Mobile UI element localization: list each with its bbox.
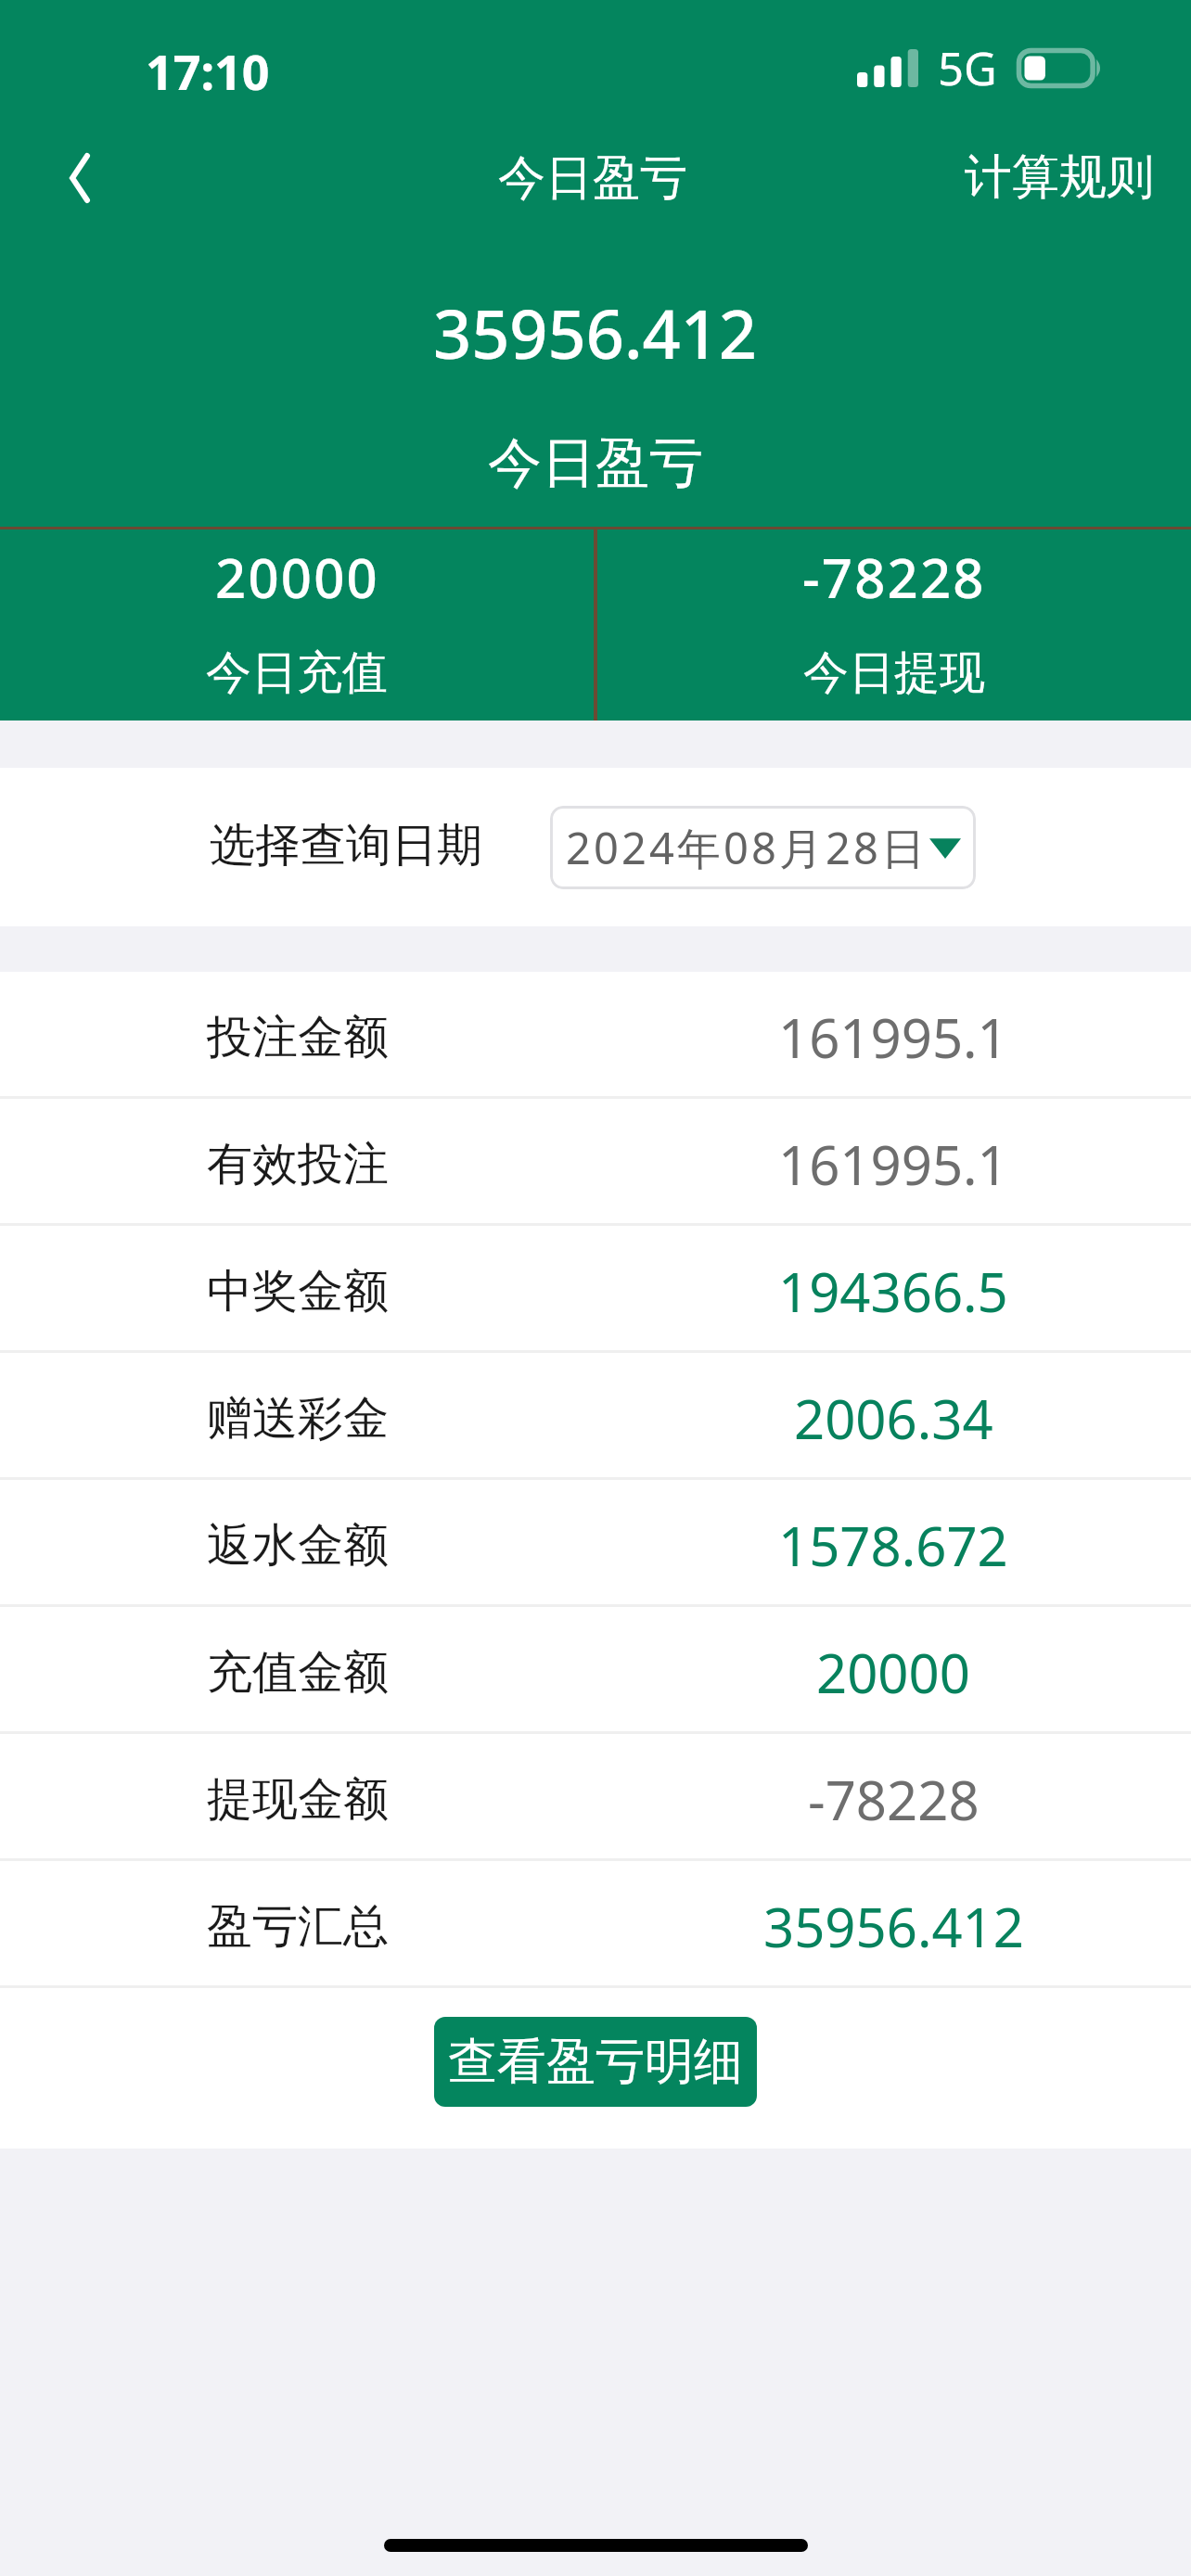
staticText: 2006.34 <box>794 1382 993 1455</box>
staticText: 今日盈亏 <box>498 148 687 208</box>
staticText: 返水金额 <box>207 1517 389 1575</box>
staticText: 赠送彩金 <box>207 1390 389 1447</box>
staticText: 今日充值 <box>206 644 388 702</box>
staticText: 1578.672 <box>778 1509 1008 1582</box>
button[interactable]: -78228 <box>597 529 1191 721</box>
staticText: 194366.5 <box>778 1255 1008 1328</box>
staticText: 2024年08月28日 <box>566 818 928 877</box>
button[interactable]: 计算规则 <box>946 127 1172 227</box>
staticText: 今日盈亏 <box>488 429 703 497</box>
button[interactable]: 赠送彩金 <box>0 1353 1191 1477</box>
staticText: 查看盈亏明细 <box>448 2031 743 2093</box>
staticText: 20000 <box>215 541 379 614</box>
staticText: -78228 <box>808 1763 980 1836</box>
staticText: 计算规则 <box>965 147 1154 207</box>
staticText: 20000 <box>816 1636 970 1709</box>
button[interactable]: 查看盈亏明细 <box>434 2017 757 2107</box>
button[interactable]: 充值金额 <box>0 1607 1191 1731</box>
button[interactable]: 投注金额 <box>0 972 1191 1096</box>
staticText: 35956.412 <box>763 1890 1024 1963</box>
button[interactable]: 提现金额 <box>0 1734 1191 1858</box>
staticText: 有效投注 <box>207 1136 389 1193</box>
staticText: 161995.1 <box>778 1128 1008 1201</box>
button[interactable]: 返水金额 <box>0 1480 1191 1604</box>
staticText: 161995.1 <box>778 1001 1008 1074</box>
staticText: -78228 <box>802 541 986 614</box>
button[interactable]: 中奖金额 <box>0 1226 1191 1350</box>
staticText: 投注金额 <box>207 1009 389 1066</box>
staticText: 盈亏汇总 <box>207 1898 389 1956</box>
staticText: 今日提现 <box>803 644 985 702</box>
staticText: 选择查询日期 <box>210 817 482 874</box>
staticText: 5G <box>938 37 997 99</box>
button[interactable]: 2024年08月28日 <box>550 806 976 889</box>
button[interactable]: Back <box>37 135 122 221</box>
staticText: 提现金额 <box>207 1771 389 1829</box>
staticText: 中奖金额 <box>207 1263 389 1320</box>
staticText: 充值金额 <box>207 1644 389 1702</box>
staticText: 17:10 <box>146 38 270 104</box>
staticText: 35956.412 <box>433 287 758 378</box>
button[interactable]: 盈亏汇总 <box>0 1861 1191 1985</box>
button[interactable]: 有效投注 <box>0 1099 1191 1223</box>
button[interactable]: 20000 <box>0 529 594 721</box>
